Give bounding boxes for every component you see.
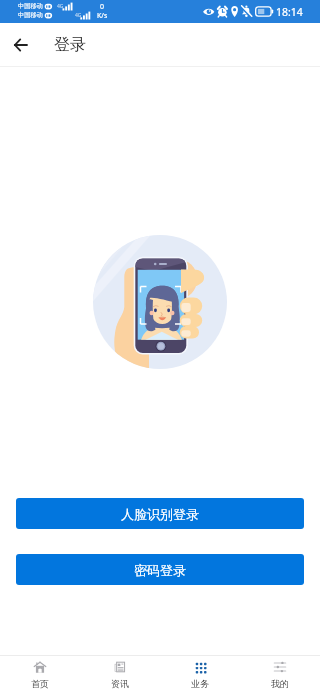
staticText: K/s [97,11,108,21]
button[interactable]: 首页 [0,656,80,693]
staticText: 18:14 [276,5,303,19]
staticText: 中国移动 [18,11,43,19]
button[interactable]: 资讯 [80,656,160,693]
button[interactable]: 密码登录 [16,554,304,585]
staticText: 人脸识别登录 [121,506,199,522]
staticText: 0 [100,2,105,12]
staticText: 中国移动 [18,2,43,10]
staticText: 密码登录 [134,562,186,578]
staticText: 我的 [271,678,289,689]
button[interactable]: 业务 [160,656,240,693]
button[interactable]: 人脸识别登录 [16,498,304,529]
staticText: 资讯 [111,678,129,689]
button[interactable]: Back [0,23,40,66]
button[interactable]: 我的 [240,656,320,693]
staticText: 登录 [54,35,86,55]
staticText: 4G [57,3,64,10]
staticText: 首页 [31,678,49,689]
staticText: 4G [75,12,82,19]
staticText: 业务 [191,678,209,689]
